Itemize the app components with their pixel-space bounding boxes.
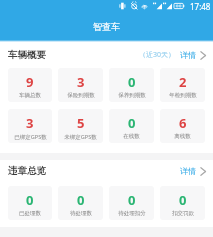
- button[interactable]: 详情: [180, 50, 206, 60]
- staticText: 详情: [180, 166, 196, 176]
- staticText: 0: [77, 191, 85, 209]
- staticText: 违章总览: [8, 165, 46, 177]
- staticText: 保养到期数: [118, 92, 146, 99]
- button[interactable]: 2: [160, 68, 205, 102]
- button[interactable]: 5: [58, 109, 103, 143]
- staticText: 待处理数: [70, 210, 92, 217]
- staticText: 已绑定GPS数: [14, 133, 47, 141]
- staticText: 待处理扣分: [118, 210, 146, 217]
- button[interactable]: 详情: [180, 166, 206, 176]
- button[interactable]: 3: [8, 109, 52, 143]
- button[interactable]: 0: [160, 186, 205, 220]
- button[interactable]: 3: [58, 68, 103, 102]
- staticText: 车辆概要: [8, 49, 46, 61]
- staticText: 离线数: [174, 133, 191, 140]
- staticText: 车辆总数: [19, 92, 41, 99]
- staticText: 0: [128, 191, 136, 209]
- staticText: 3: [77, 73, 85, 91]
- staticText: 3: [26, 114, 34, 132]
- staticText: （近30天）: [139, 50, 176, 60]
- staticText: 保险到期数: [67, 92, 95, 99]
- staticText: 0: [26, 191, 34, 209]
- staticText: 2: [179, 73, 187, 91]
- staticText: 17:48: [190, 1, 211, 12]
- staticText: 9: [26, 73, 34, 91]
- staticText: 0: [128, 73, 136, 91]
- button[interactable]: 0: [8, 186, 52, 220]
- staticText: 未绑定GPS数: [64, 133, 97, 141]
- button[interactable]: 0: [109, 109, 154, 143]
- button[interactable]: 0: [58, 186, 103, 220]
- button[interactable]: 9: [8, 68, 52, 102]
- button[interactable]: 6: [160, 109, 205, 143]
- staticText: 智查车: [93, 21, 120, 32]
- staticText: 6: [179, 114, 187, 132]
- button[interactable]: 0: [109, 68, 154, 102]
- staticText: 年检到期数: [169, 92, 197, 99]
- staticText: 已处理数: [19, 210, 41, 217]
- staticText: 0: [128, 114, 136, 132]
- staticText: 详情: [180, 50, 196, 60]
- button[interactable]: 0: [109, 186, 154, 220]
- staticText: 0: [179, 191, 187, 209]
- staticText: 扣交罚款: [172, 210, 194, 217]
- staticText: 在线数: [123, 133, 140, 140]
- staticText: 5: [77, 114, 85, 132]
